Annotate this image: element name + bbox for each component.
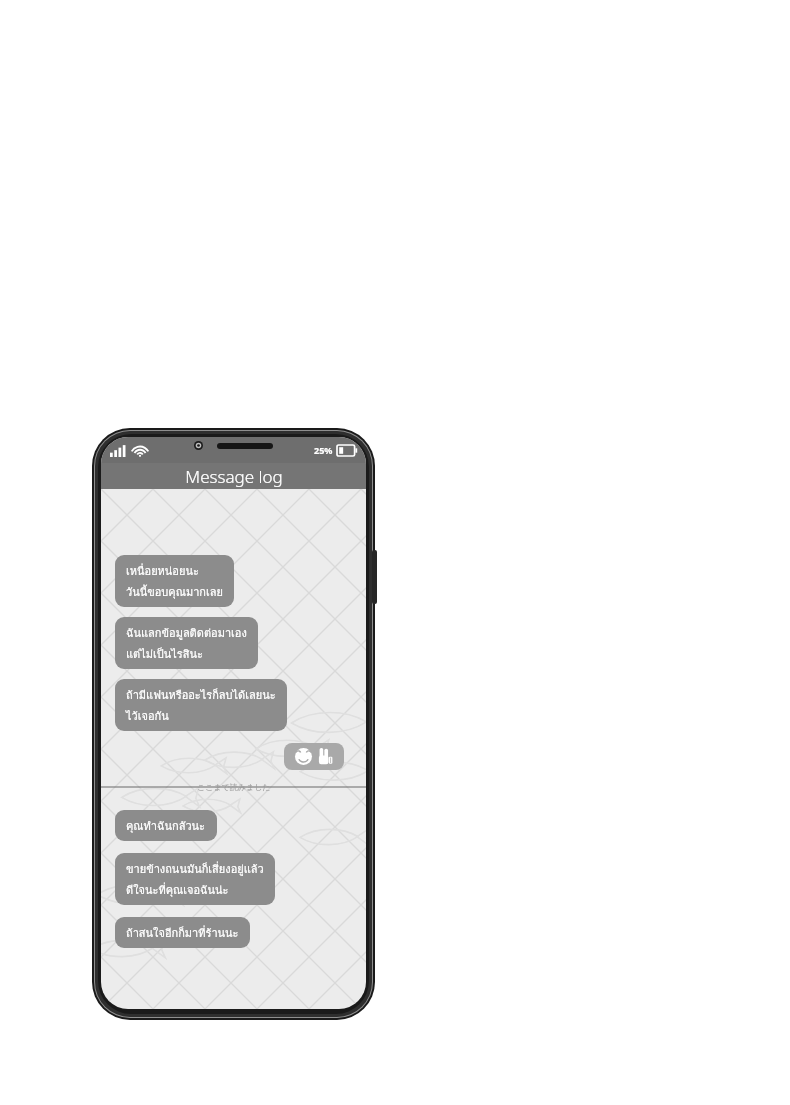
staticText: Message log: [185, 465, 283, 488]
staticText: คุณทำฉันกลัวนะ: [126, 817, 206, 834]
staticText: แต่ไม่เป็นไรสินะ: [126, 645, 203, 662]
button[interactable]: ถ้ามีแฟนหรืออะไรก็ลบได้เลยนะ: [115, 679, 287, 731]
other: Power button: [372, 550, 377, 604]
staticText: ถ้าสนใจอีกก็มาที่ร้านนะ: [126, 924, 239, 941]
staticText: 25%: [314, 444, 333, 456]
button[interactable]: คุณทำฉันกลัวนะ: [115, 810, 217, 841]
staticText: ฉันแลกข้อมูลติดต่อมาเอง: [126, 624, 247, 641]
staticText: ไว้เจอกัน: [126, 707, 169, 724]
button[interactable]: ขายข้างถนนมันก็เสี่ยงอยู่แล้ว: [115, 853, 275, 905]
button[interactable]: ถ้าสนใจอีกก็มาที่ร้านนะ: [115, 917, 250, 948]
staticText: เหนื่อยหน่อยนะ: [126, 562, 199, 579]
staticText: ดีใจนะที่คุณเจอฉันน่ะ: [126, 881, 229, 898]
staticText: ここまで読みました: [197, 782, 271, 792]
button[interactable]: Emoji message: [284, 743, 344, 770]
button[interactable]: เหนื่อยหน่อยนะ: [115, 555, 234, 607]
staticText: ถ้ามีแฟนหรืออะไรก็ลบได้เลยนะ: [126, 686, 276, 703]
staticText: ขายข้างถนนมันก็เสี่ยงอยู่แล้ว: [126, 860, 264, 877]
staticText: วันนี้ขอบคุณมากเลย: [126, 583, 223, 600]
button[interactable]: ฉันแลกข้อมูลติดต่อมาเอง: [115, 617, 258, 669]
